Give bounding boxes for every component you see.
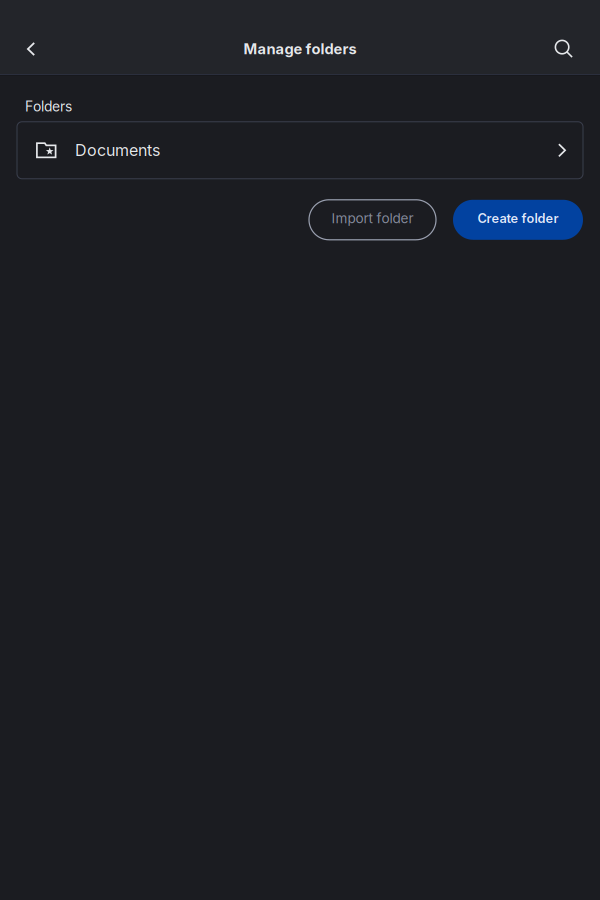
button[interactable]: Documents [0, 122, 600, 179]
button[interactable]: Search [541, 24, 587, 74]
button[interactable]: Back [8, 24, 54, 74]
staticText: Manage folders [243, 40, 356, 58]
staticText: Folders [25, 98, 72, 115]
staticText: Create folder [477, 210, 558, 226]
button[interactable]: Import folder [309, 200, 436, 240]
staticText: Documents [75, 141, 160, 160]
staticText: Import folder [331, 210, 413, 227]
button[interactable]: Create folder [453, 200, 583, 240]
